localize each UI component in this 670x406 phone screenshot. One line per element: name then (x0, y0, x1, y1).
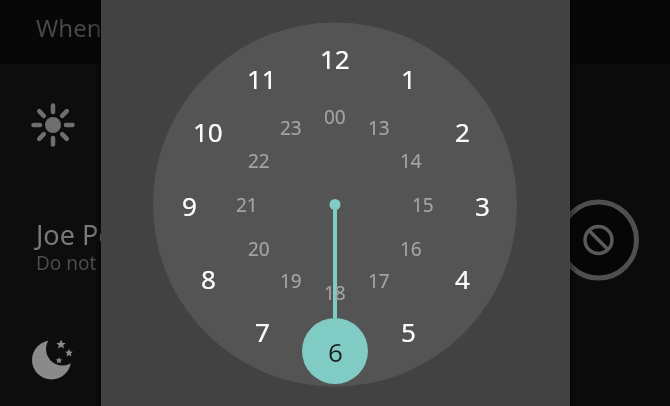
button[interactable]: 18 (315, 273, 355, 313)
staticText: 6 (328, 334, 343, 369)
staticText: 4 (455, 261, 470, 296)
button[interactable]: 9 (167, 183, 211, 227)
button[interactable]: 00 (315, 97, 355, 137)
button[interactable]: 2 (440, 109, 484, 153)
button[interactable]: 5 (386, 309, 430, 353)
staticText: 16 (400, 236, 422, 262)
button[interactable]: 13 (359, 108, 399, 148)
button[interactable]: 11 (240, 56, 284, 100)
staticText: 22 (248, 148, 270, 174)
staticText: 8 (201, 261, 216, 296)
button[interactable]: 15 (403, 185, 443, 225)
staticText: 20 (248, 236, 270, 262)
staticText: 23 (280, 115, 302, 141)
staticText: 21 (236, 192, 258, 218)
staticText: 2 (455, 114, 470, 149)
button[interactable]: 3 (460, 183, 504, 227)
staticText: When (36, 11, 102, 44)
staticText: Do not disturb (36, 250, 166, 276)
button[interactable]: 6 (313, 329, 357, 373)
staticText: 17 (368, 268, 390, 294)
staticText: 14 (400, 148, 422, 174)
staticText: 3 (475, 188, 490, 223)
staticText: 5 (401, 314, 416, 349)
staticText: 9 (182, 188, 197, 223)
button[interactable]: 10 (186, 109, 230, 153)
staticText: 19 (280, 268, 302, 294)
button[interactable]: 17 (359, 261, 399, 301)
staticText: 1 (401, 61, 416, 96)
button[interactable]: 22 (239, 141, 279, 181)
button[interactable]: 8 (186, 256, 230, 300)
staticText: 12 (320, 41, 350, 76)
button[interactable]: 14 (391, 141, 431, 181)
staticText: Joe Perry (36, 216, 150, 253)
button[interactable]: 19 (271, 261, 311, 301)
staticText: 7 (255, 314, 270, 349)
staticText: 15 (412, 192, 434, 218)
button[interactable]: 7 (240, 309, 284, 353)
button[interactable]: 12 (313, 36, 357, 80)
button[interactable]: 1 (386, 56, 430, 100)
staticText: 10 (193, 114, 223, 149)
staticText: 18 (324, 280, 346, 306)
staticText: 11 (247, 61, 277, 96)
button[interactable]: 20 (239, 229, 279, 269)
button[interactable]: 16 (391, 229, 431, 269)
staticText: 00 (324, 104, 346, 130)
button[interactable]: 4 (440, 256, 484, 300)
staticText: 13 (368, 115, 390, 141)
button[interactable] (560, 201, 638, 279)
button[interactable]: 23 (271, 108, 311, 148)
button[interactable]: 21 (227, 185, 267, 225)
